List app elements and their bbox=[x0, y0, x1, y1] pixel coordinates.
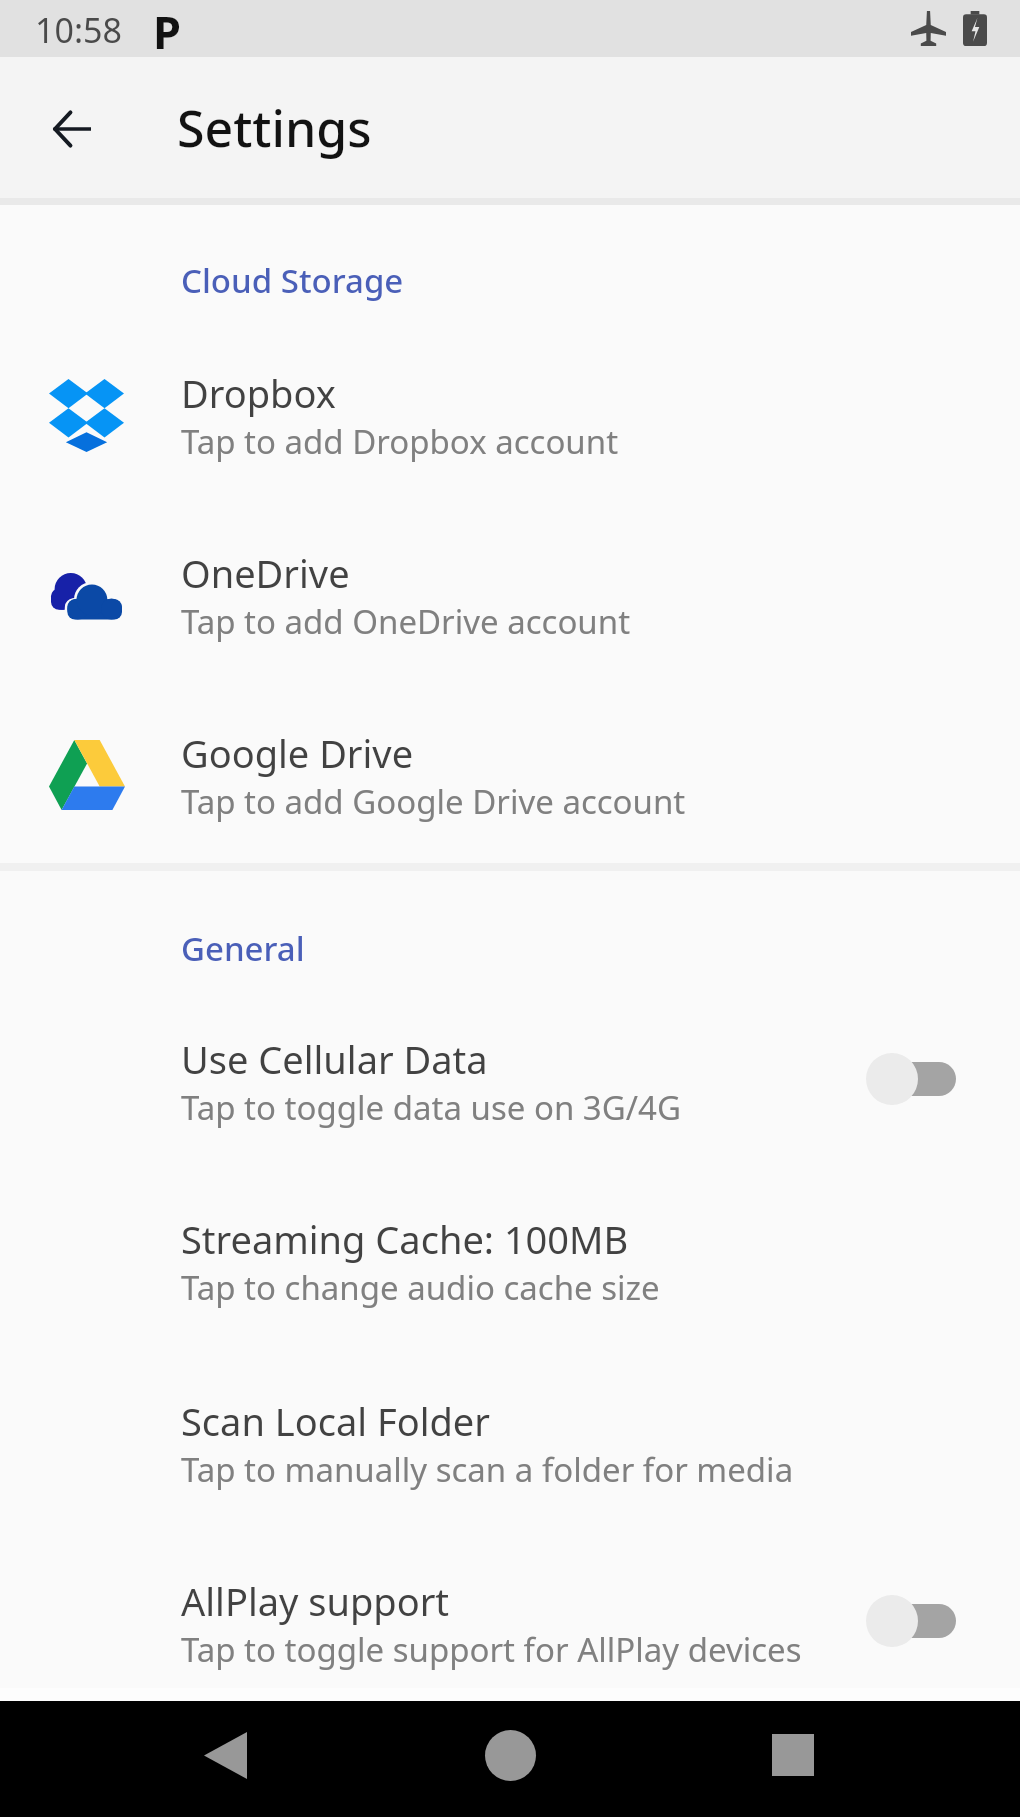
button[interactable]: Streaming Cache: 100MB bbox=[0, 1188, 1020, 1368]
staticText: Dropbox bbox=[181, 367, 336, 419]
staticText: General bbox=[181, 926, 305, 971]
other: Airplane mode bbox=[911, 11, 946, 46]
button[interactable]: Scan Local Folder bbox=[0, 1370, 1020, 1550]
button[interactable]: Recent apps bbox=[753, 1715, 833, 1795]
staticText: AllPlay support bbox=[181, 1575, 450, 1627]
other: Battery charging bbox=[963, 11, 987, 46]
button[interactable]: Navigate back bbox=[24, 81, 120, 177]
button[interactable]: Back bbox=[185, 1715, 265, 1795]
staticText: Google Drive bbox=[181, 727, 414, 779]
staticText: Scan Local Folder bbox=[181, 1395, 490, 1447]
staticText: Tap to change audio cache size bbox=[181, 1265, 660, 1310]
staticText: OneDrive bbox=[181, 547, 350, 599]
button[interactable]: Toggle Use Cellular Data bbox=[836, 1019, 996, 1139]
button[interactable]: Use Cellular Data bbox=[0, 1008, 1020, 1188]
staticText: Settings bbox=[177, 94, 372, 162]
button[interactable]: Google Drive bbox=[0, 702, 1020, 882]
button[interactable]: Dropbox bbox=[0, 342, 1020, 522]
staticText: P bbox=[153, 1, 181, 58]
staticText: Cloud Storage bbox=[181, 258, 404, 303]
staticText: Streaming Cache: 100MB bbox=[181, 1213, 629, 1265]
staticText: Tap to toggle data use on 3G/4G bbox=[181, 1085, 681, 1130]
staticText: 10:58 bbox=[35, 7, 122, 53]
staticText: Tap to add OneDrive account bbox=[181, 599, 631, 644]
staticText: Tap to manually scan a folder for media bbox=[181, 1447, 794, 1492]
staticText: Tap to add Dropbox account bbox=[181, 419, 619, 464]
staticText: Tap to toggle support for AllPlay device… bbox=[181, 1627, 802, 1672]
staticText: Use Cellular Data bbox=[181, 1033, 488, 1085]
staticText: Tap to add Google Drive account bbox=[181, 779, 686, 824]
button[interactable]: AllPlay support bbox=[0, 1550, 1020, 1730]
button[interactable]: Toggle AllPlay support bbox=[836, 1561, 996, 1681]
button[interactable]: Home bbox=[470, 1715, 550, 1795]
button[interactable]: OneDrive bbox=[0, 522, 1020, 702]
